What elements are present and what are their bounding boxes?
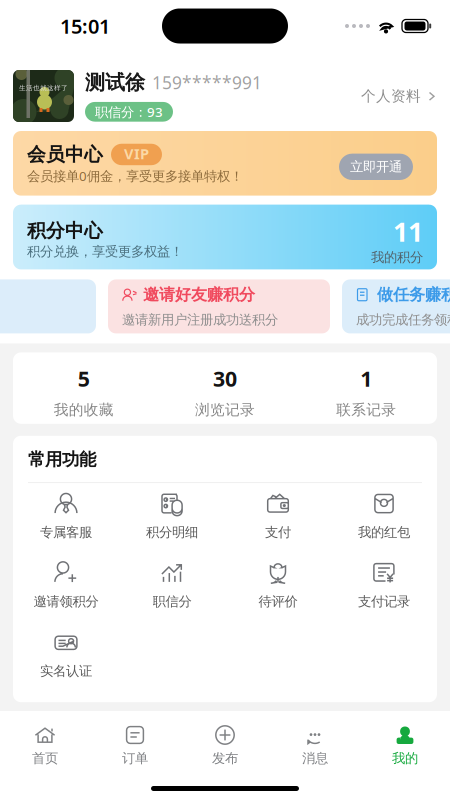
- staticText: 邀请领积分: [33, 593, 98, 610]
- staticText: 订单: [122, 750, 148, 766]
- button[interactable]: 支付: [225, 491, 331, 540]
- button[interactable]: 30: [154, 364, 296, 419]
- button[interactable]: 支付记录: [331, 560, 437, 610]
- button[interactable]: 会员中心: [13, 131, 437, 196]
- staticText: 我的积分: [371, 249, 423, 265]
- staticText: 职信分：93: [95, 103, 163, 121]
- staticText: 11: [393, 214, 423, 249]
- button[interactable]: 待评价: [225, 560, 331, 610]
- staticText: 常用功能: [28, 449, 96, 470]
- staticText: 成功完成任务领积分: [356, 312, 450, 328]
- button[interactable]: 5: [13, 364, 154, 419]
- staticText: 首页: [32, 750, 58, 766]
- button[interactable]: 我的红包: [331, 491, 437, 540]
- staticText: 支付: [265, 524, 291, 540]
- staticText: 积分明细: [146, 524, 198, 540]
- staticText: 支付记录: [358, 593, 410, 610]
- button[interactable]: 我的: [360, 724, 450, 766]
- staticText: 积分兑换，享受更多权益！: [27, 243, 183, 260]
- button[interactable]: 职信分: [119, 560, 225, 610]
- button[interactable]: 首页: [0, 724, 90, 766]
- button[interactable]: 个人资料: [361, 81, 437, 111]
- staticText: 邀请好友赚积分: [143, 285, 255, 305]
- staticText: 联系记录: [336, 401, 396, 419]
- button[interactable]: 订单: [90, 724, 180, 766]
- staticText: 15:01: [60, 13, 110, 39]
- staticText: 测试徐: [85, 70, 145, 95]
- button[interactable]: 头像: [13, 70, 74, 122]
- staticText: 会员接单0佣金，享受更多接单特权！: [27, 167, 243, 185]
- staticText: 个人资料: [361, 87, 421, 105]
- staticText: 我的: [392, 750, 418, 766]
- button[interactable]: 积分明细: [119, 491, 225, 540]
- button[interactable]: 专属客服: [13, 491, 119, 540]
- button[interactable]: 做任务赚积分: [342, 279, 450, 333]
- button[interactable]: 积分中心: [13, 205, 437, 269]
- button[interactable]: 1: [296, 364, 437, 419]
- staticText: 实名认证: [40, 663, 92, 679]
- button[interactable]: 邀请领积分: [13, 560, 119, 610]
- staticText: 我的收藏: [54, 401, 114, 419]
- staticText: VIP: [124, 144, 149, 163]
- staticText: 做任务赚积分: [377, 285, 450, 305]
- button[interactable]: 邀请好友赚积分: [108, 279, 330, 333]
- staticText: 浏览记录: [195, 401, 255, 419]
- staticText: 159*****991: [152, 71, 262, 94]
- staticText: 待评价: [258, 593, 297, 610]
- staticText: 1: [360, 364, 372, 393]
- button[interactable]: 消息: [270, 724, 360, 766]
- button[interactable]: 签到领积分: [0, 279, 96, 333]
- staticText: 我的红包: [358, 524, 410, 540]
- staticText: 5: [78, 364, 90, 393]
- staticText: 积分中心: [27, 219, 103, 242]
- staticText: 专属客服: [40, 524, 92, 540]
- staticText: 职信分: [152, 593, 191, 610]
- staticText: 发布: [212, 750, 238, 766]
- staticText: 生活也就这样了: [19, 84, 68, 92]
- staticText: 立即开通: [350, 159, 402, 175]
- button[interactable]: 实名认证: [13, 630, 119, 679]
- staticText: 邀请新用户注册成功送积分: [122, 312, 278, 328]
- staticText: 消息: [302, 750, 328, 766]
- staticText: 会员中心: [27, 143, 103, 166]
- button[interactable]: 发布: [180, 724, 270, 766]
- staticText: 30: [213, 364, 237, 393]
